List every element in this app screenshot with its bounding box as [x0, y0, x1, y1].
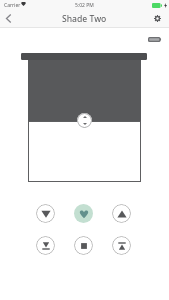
staticText: Carrier [4, 2, 21, 9]
button[interactable]: Favorite position [74, 204, 93, 223]
button[interactable]: Lower shade [36, 204, 55, 223]
staticText: Shade Two [62, 13, 107, 25]
button[interactable]: Back [0, 10, 17, 27]
button[interactable]: Open fully [112, 236, 131, 255]
button[interactable]: Stop [74, 236, 93, 255]
staticText: 5:02 PM [75, 2, 94, 9]
button[interactable]: Drag shade [77, 113, 92, 128]
button[interactable]: Raise shade [112, 204, 131, 223]
button[interactable]: Close fully [36, 236, 55, 255]
button[interactable]: Settings [148, 10, 166, 27]
